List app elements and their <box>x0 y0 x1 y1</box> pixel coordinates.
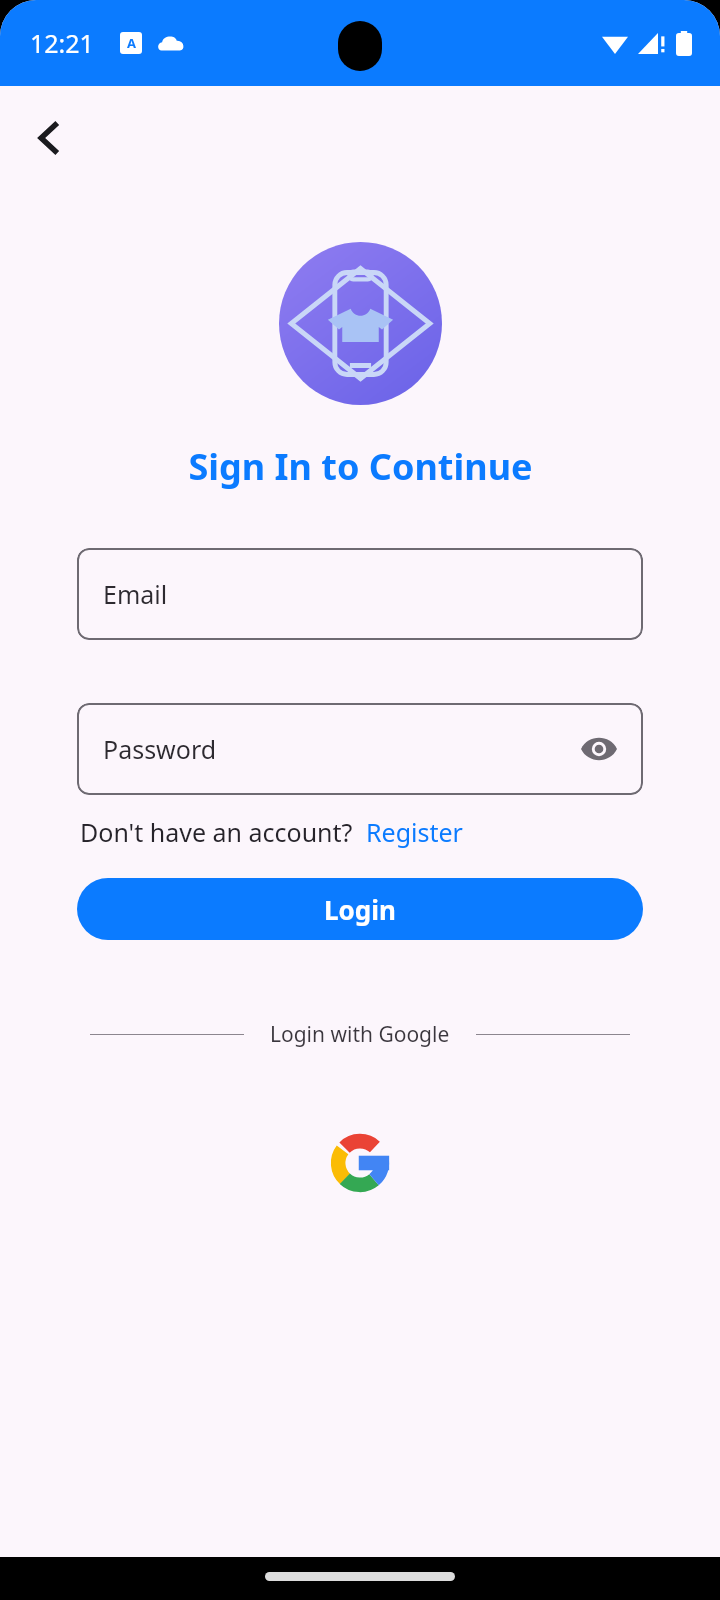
button[interactable]: Back <box>20 108 80 168</box>
button[interactable]: Register <box>366 815 463 849</box>
staticText: Login with Google <box>270 1020 450 1049</box>
button[interactable]: Password <box>77 703 643 795</box>
staticText: Sign In to Continue <box>188 442 533 491</box>
staticText: Email <box>103 577 168 611</box>
staticText: Register <box>366 815 463 849</box>
button[interactable]: Sign in with Google <box>324 1127 396 1199</box>
button[interactable]: Show password <box>575 725 623 773</box>
staticText: A <box>127 34 136 52</box>
staticText: 12:21 <box>30 26 94 60</box>
button[interactable]: Login <box>77 878 643 940</box>
staticText: Don't have an account? <box>80 815 353 849</box>
staticText: Login <box>324 892 396 927</box>
staticText: Password <box>103 732 217 766</box>
button[interactable]: Email <box>77 548 643 640</box>
